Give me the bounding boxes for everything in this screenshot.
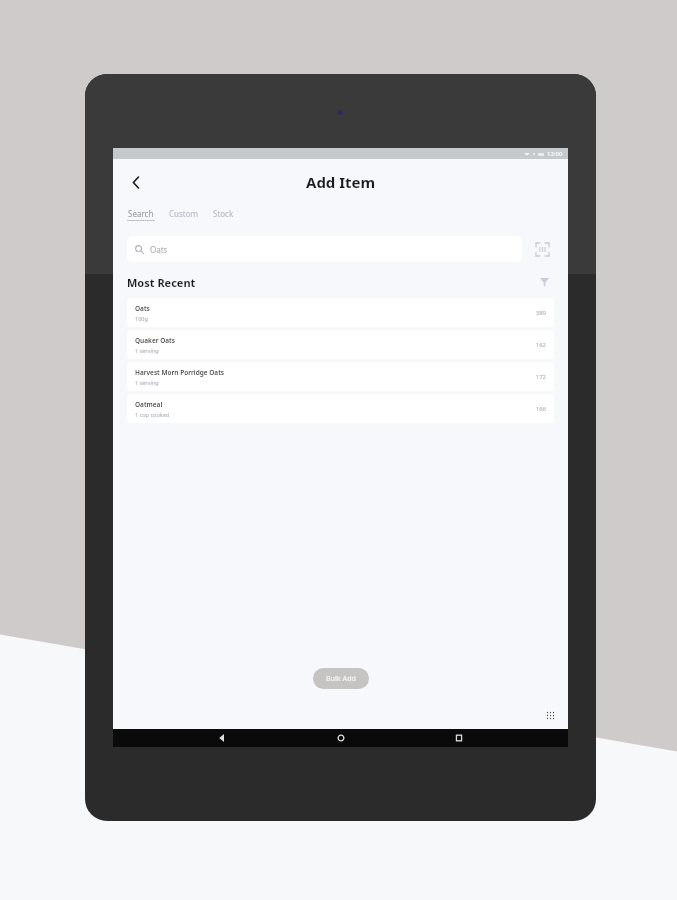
staticText: 1 serving [135,347,159,354]
staticText: 172 [535,373,546,381]
staticText: Custom [169,208,199,219]
button[interactable]: Harvest Morn Porridge Oats [127,362,554,391]
staticText: Harvest Morn Porridge Oats [135,368,225,377]
staticText: 100g [135,315,148,322]
staticText: Most Recent [127,275,196,290]
button[interactable]: Back [213,729,231,747]
button[interactable]: Oats [127,236,522,262]
staticText: 1 serving [135,379,159,386]
staticText: Stock [213,208,234,219]
staticText: Oats [135,304,150,313]
button[interactable]: Home [332,729,350,747]
staticText: Bulk Add [326,674,356,684]
staticText: Oatmeal [135,400,163,409]
button[interactable]: Apps [542,707,558,723]
button[interactable]: Oats [127,298,554,327]
button[interactable]: Quaker Oats [127,330,554,359]
button[interactable]: Back [123,169,149,195]
staticText: 389 [535,309,546,317]
button[interactable]: Recents [450,729,468,747]
button[interactable]: Filter [534,272,554,292]
staticText: 12:00 [547,150,563,158]
staticText: 166 [535,405,546,413]
button[interactable]: Oatmeal [127,394,554,423]
staticText: Search [128,208,154,219]
button[interactable]: Bulk Add [313,668,369,689]
button[interactable]: Search [127,205,155,224]
button[interactable]: Stock [213,205,234,224]
staticText: 162 [535,341,546,349]
staticText: Add Item [306,172,376,192]
staticText: Quaker Oats [135,336,175,345]
staticText: 1 cup cooked [135,411,170,418]
button[interactable]: Scan barcode [530,237,554,261]
button[interactable]: Custom [169,205,199,224]
staticText: Oats [150,244,168,255]
